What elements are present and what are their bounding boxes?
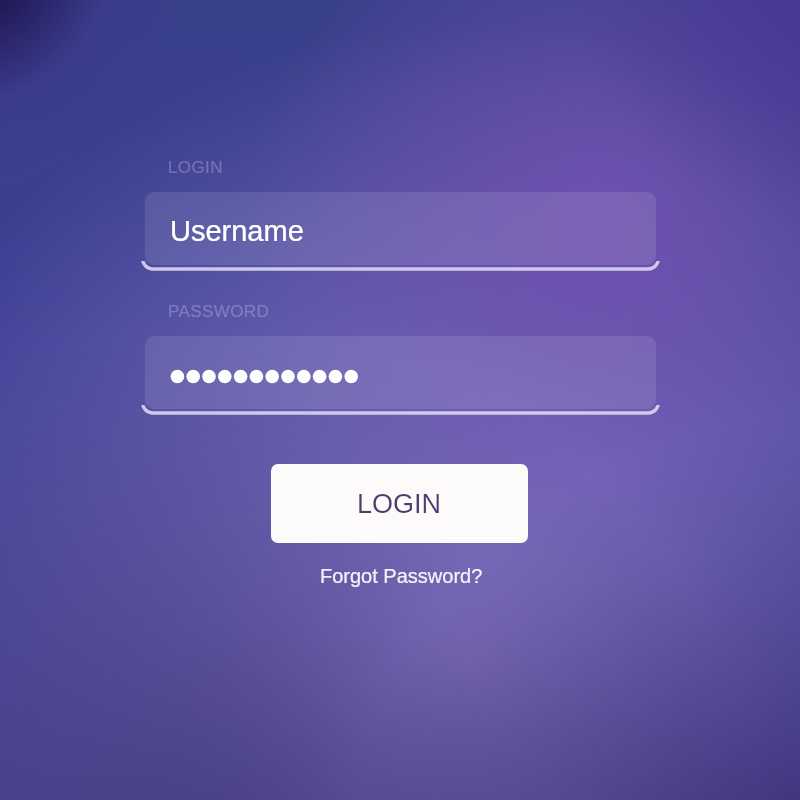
- button[interactable]: [145, 336, 656, 409]
- button[interactable]: LOGIN: [271, 464, 528, 543]
- staticText: Username: [170, 215, 304, 247]
- staticText: PASSWORD: [168, 302, 270, 321]
- staticText: Forgot Password?: [320, 565, 483, 587]
- button[interactable]: [145, 192, 656, 265]
- staticText: LOGIN: [168, 158, 223, 177]
- staticText: LOGIN: [357, 489, 442, 519]
- button[interactable]: Forgot Password?: [310, 559, 493, 593]
